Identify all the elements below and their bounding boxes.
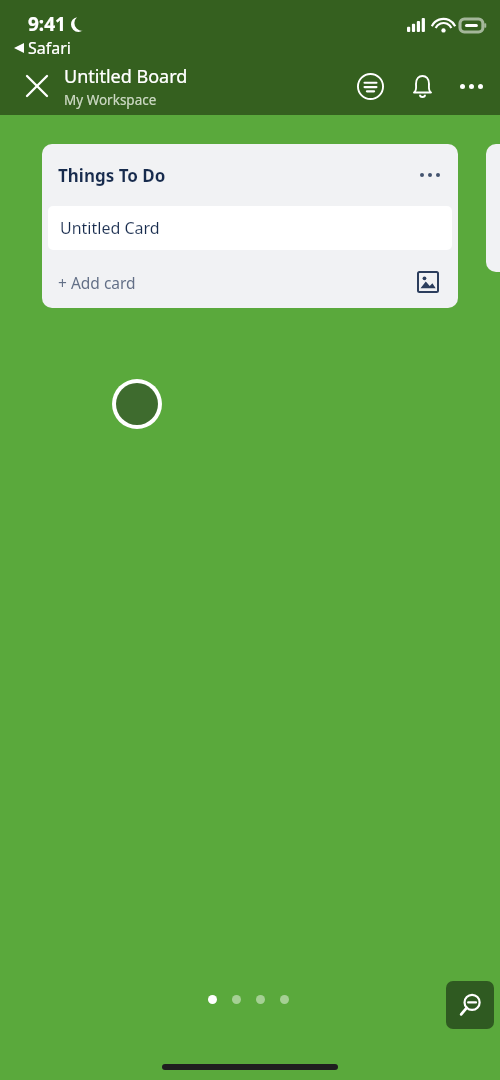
button[interactable]: More options: [448, 63, 494, 109]
button[interactable]: [486, 144, 500, 272]
button[interactable]: Board member: [112, 379, 162, 429]
staticText: 9:41: [28, 11, 66, 37]
button[interactable]: Add card from image: [412, 266, 444, 298]
button[interactable]: Untitled Card: [48, 206, 452, 250]
staticText: My Workspace: [64, 91, 157, 109]
staticText: Safari: [28, 37, 71, 59]
staticText: Things To Do: [58, 164, 410, 187]
staticText: + Add card: [58, 272, 412, 293]
button[interactable]: Untitled Board: [64, 62, 348, 111]
button[interactable]: Zoom out: [446, 981, 494, 1029]
button[interactable]: Things To Do: [42, 144, 458, 206]
button[interactable]: Close: [14, 63, 60, 109]
button[interactable]: List actions: [410, 155, 450, 195]
staticText: Untitled Board: [64, 64, 188, 89]
button[interactable]: Notifications: [400, 64, 444, 108]
staticText: Untitled Card: [60, 217, 160, 239]
button[interactable]: Filter: [348, 64, 392, 108]
button[interactable]: + Add card: [42, 256, 458, 308]
button[interactable]: Safari: [12, 36, 73, 60]
